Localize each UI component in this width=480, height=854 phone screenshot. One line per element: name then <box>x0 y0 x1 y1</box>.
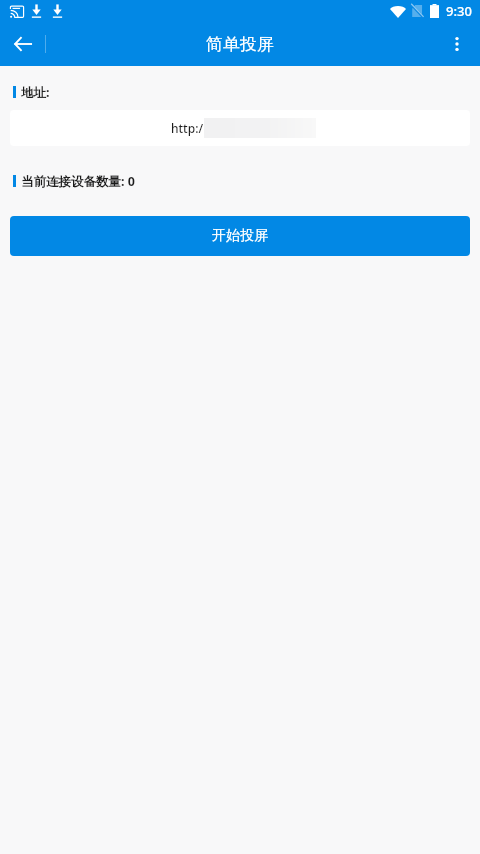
button[interactable]: Back <box>6 27 40 61</box>
staticText: http:/ <box>171 120 204 136</box>
staticText: 地址: <box>21 84 50 101</box>
staticText: 当前连接设备数量: 0 <box>21 173 135 190</box>
staticText: 9:30 <box>446 2 472 20</box>
button[interactable]: http:/ <box>10 110 470 146</box>
button[interactable]: More options <box>438 25 476 63</box>
staticText: 开始投屏 <box>212 227 268 245</box>
staticText: 简单投屏 <box>206 34 274 55</box>
button[interactable]: 开始投屏 <box>10 216 470 256</box>
